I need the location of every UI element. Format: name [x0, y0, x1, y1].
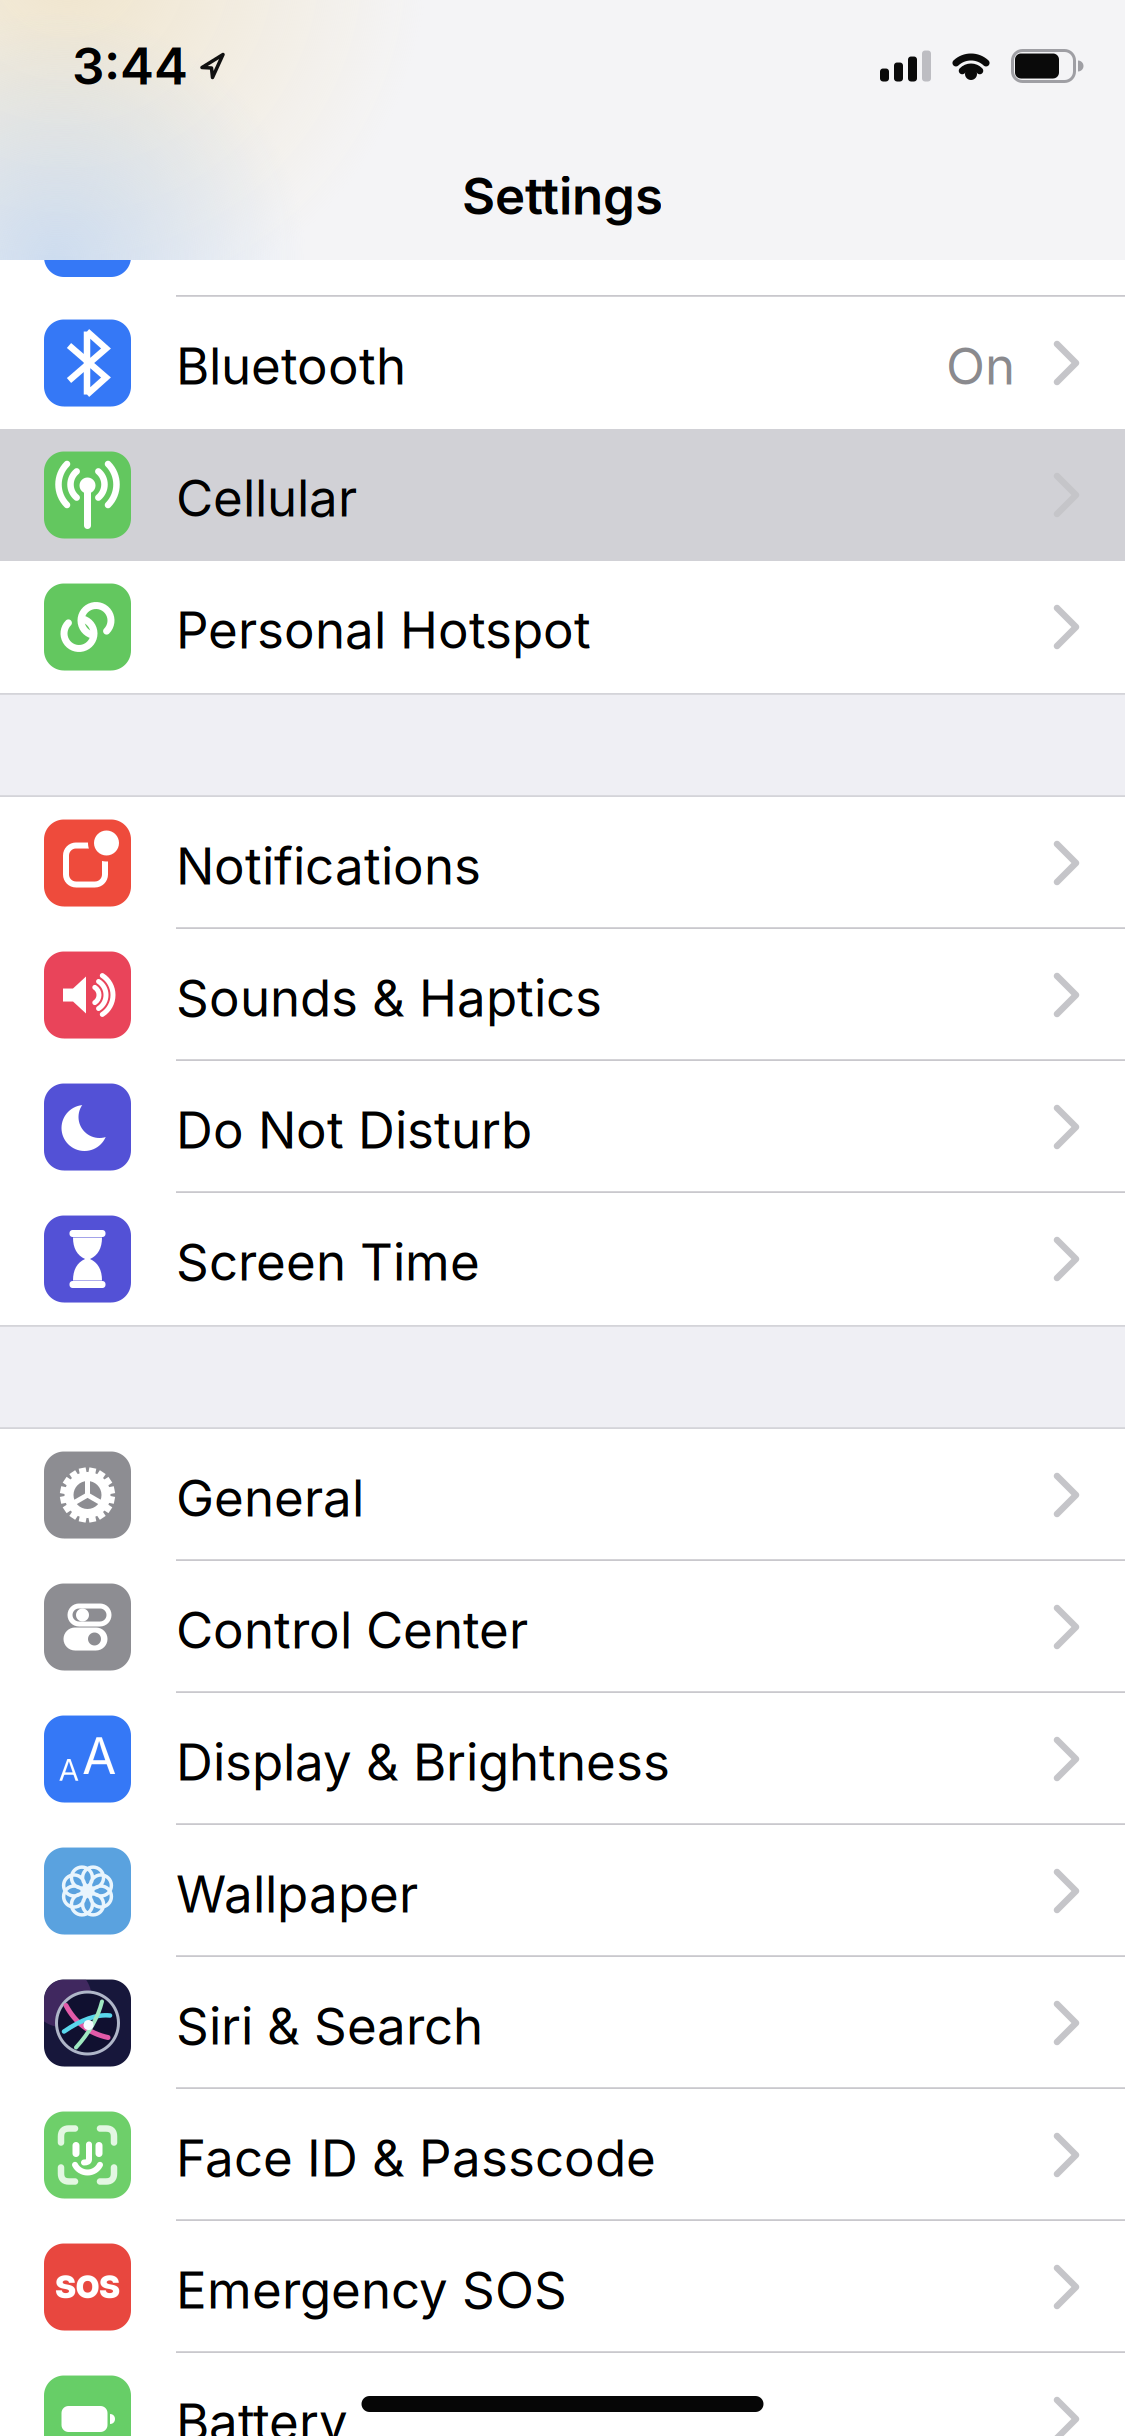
staticText: Cellular	[176, 468, 357, 528]
staticText: Battery	[176, 2392, 348, 2436]
button[interactable]: Personal Hotspot	[0, 561, 1125, 693]
button[interactable]: Face ID & Passcode	[0, 2089, 1125, 2221]
staticText: A	[59, 1752, 79, 1787]
staticText: SOS	[55, 2269, 120, 2305]
staticText: Notifications	[176, 836, 481, 896]
button[interactable]: Wallpaper	[0, 1825, 1125, 1957]
staticText: Emergency SOS	[176, 2260, 567, 2320]
staticText: Wallpaper	[176, 1864, 418, 1924]
button[interactable]: General	[0, 1429, 1125, 1561]
staticText: Sounds & Haptics	[176, 968, 602, 1028]
staticText: General	[176, 1468, 364, 1528]
button[interactable]: A	[0, 1693, 1125, 1825]
staticText: Personal Hotspot	[176, 600, 591, 660]
button[interactable]: Screen Time	[0, 1193, 1125, 1325]
staticText: Bluetooth	[176, 336, 406, 396]
staticText: Control Center	[176, 1600, 528, 1660]
button[interactable]: Siri & Search	[0, 1957, 1125, 2089]
staticText: Face ID & Passcode	[176, 2128, 656, 2188]
staticText: A	[82, 1726, 116, 1785]
button[interactable]: Sounds & Haptics	[0, 929, 1125, 1061]
staticText: Siri & Search	[176, 1996, 483, 2056]
staticText: Do Not Disturb	[176, 1100, 532, 1160]
button[interactable]: Control Center	[0, 1561, 1125, 1693]
button[interactable]: SOS	[0, 2221, 1125, 2353]
button[interactable]: Home	[361, 2396, 763, 2412]
staticText: Screen Time	[176, 1232, 480, 1292]
button[interactable]: Bluetooth	[0, 297, 1125, 429]
staticText: Settings	[462, 166, 663, 226]
staticText: Display & Brightness	[176, 1732, 670, 1792]
button[interactable]: Do Not Disturb	[0, 1061, 1125, 1193]
button[interactable]: Battery	[0, 2353, 1125, 2436]
staticText: On	[946, 336, 1015, 396]
button[interactable]: Cellular	[0, 429, 1125, 561]
staticText: 3:44	[72, 36, 188, 96]
button[interactable]: Notifications	[0, 797, 1125, 929]
button[interactable]: Wi-Fi	[0, 260, 1125, 297]
